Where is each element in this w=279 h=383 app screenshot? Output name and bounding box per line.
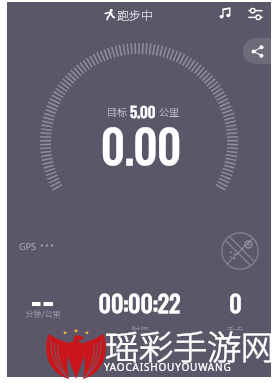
staticText: 5.00 xyxy=(130,100,156,122)
button[interactable]: 0 xyxy=(185,284,279,330)
staticText: 00:00:22 xyxy=(98,284,181,320)
staticText: 瑶彩手游网 xyxy=(105,321,275,370)
button[interactable]: 分钟/公里 xyxy=(0,284,85,330)
button[interactable]: Map xyxy=(220,231,260,271)
button[interactable]: 00:00:22 xyxy=(89,284,189,330)
staticText: 分钟/公里 xyxy=(25,308,61,320)
button[interactable]: Settings xyxy=(240,2,270,26)
staticText: GPS xyxy=(19,240,36,252)
staticText: 0.00 xyxy=(101,110,181,178)
staticText: 跑步中 xyxy=(117,6,154,23)
staticText: 目标 xyxy=(107,104,127,118)
staticText: YAOCAISHOUYOUWANG xyxy=(104,360,232,374)
staticText: 0 xyxy=(229,284,242,320)
button[interactable]: 跑步中 xyxy=(104,2,154,26)
button[interactable]: Share xyxy=(243,38,271,64)
button[interactable]: Music xyxy=(210,2,240,26)
staticText: 千卡 xyxy=(227,324,243,330)
staticText: 时间 xyxy=(132,324,148,330)
staticText: 公里 xyxy=(159,104,179,118)
